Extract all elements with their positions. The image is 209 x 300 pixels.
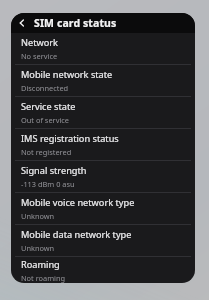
button[interactable]: Service state — [11, 97, 195, 128]
staticText: Service state — [21, 100, 76, 113]
staticText: Unknown — [21, 211, 55, 221]
button[interactable]: Mobile network state — [11, 65, 195, 96]
staticText: Roaming — [21, 258, 60, 271]
staticText: No service — [21, 51, 58, 61]
button[interactable]: Roaming — [11, 257, 195, 283]
staticText: Signal strength — [21, 164, 87, 177]
staticText: IMS registration status — [21, 132, 119, 145]
button[interactable]: Signal strength — [11, 161, 195, 192]
staticText: Mobile data network type — [21, 228, 132, 241]
staticText: Out of service — [21, 115, 70, 125]
staticText: Mobile network state — [21, 68, 113, 81]
button[interactable]: Mobile data network type — [11, 225, 195, 256]
staticText: Mobile voice network type — [21, 196, 135, 209]
staticText: -113 dBm 0 asu — [21, 179, 75, 189]
button[interactable]: IMS registration status — [11, 129, 195, 160]
staticText: Not registered — [21, 147, 72, 157]
button[interactable]: Back — [13, 14, 31, 32]
staticText: Not roaming — [21, 273, 66, 283]
staticText: Network — [21, 36, 58, 49]
button[interactable]: Network — [11, 33, 195, 64]
button[interactable]: Mobile voice network type — [11, 193, 195, 224]
staticText: Disconnected — [21, 83, 69, 93]
staticText: Unknown — [21, 243, 55, 253]
staticText: SIM card status — [34, 16, 117, 30]
